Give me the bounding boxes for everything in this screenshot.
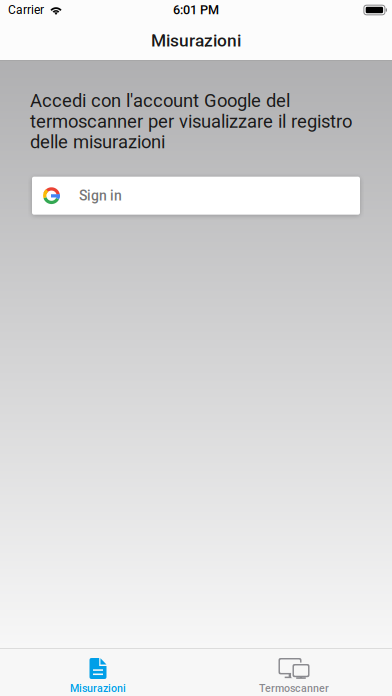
button[interactable]: Termoscanner <box>196 649 392 696</box>
staticText: Misurazioni <box>70 682 126 694</box>
button[interactable]: Sign in <box>32 177 360 215</box>
staticText: Misurazioni <box>151 30 241 51</box>
staticText: 6:01 PM <box>173 3 219 17</box>
staticText: Carrier <box>8 3 44 17</box>
button[interactable]: Misurazioni <box>0 649 196 696</box>
staticText: Accedi con l'account Google del termosca… <box>30 90 352 153</box>
staticText: Sign in <box>79 187 122 204</box>
staticText: Termoscanner <box>259 682 329 694</box>
